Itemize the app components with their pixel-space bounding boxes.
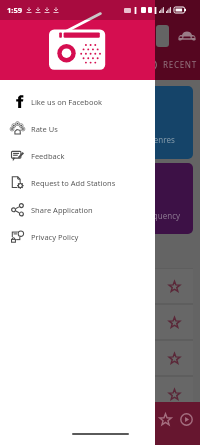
staticText: Share Application (31, 205, 93, 215)
other: Favourite (168, 388, 181, 401)
button[interactable]: Favourite (0, 304, 193, 340)
button[interactable]: Car mode (178, 30, 196, 41)
other: Favourite (168, 316, 181, 329)
staticText: Frequency (141, 210, 181, 221)
staticText: Like us on Facebook (31, 97, 102, 107)
button[interactable]: Favourite (159, 413, 172, 426)
button[interactable]: Request to Add Stations (0, 169, 155, 196)
staticText: Feedback (31, 151, 65, 161)
other: Favourite (168, 352, 181, 365)
staticText: Genres (148, 134, 175, 145)
button[interactable]: RECENT (163, 59, 197, 70)
button[interactable]: Privacy Policy (0, 223, 155, 250)
button[interactable]: Like us on Facebook (0, 88, 155, 115)
button[interactable]: Share Application (0, 196, 155, 223)
button[interactable]: Favourite (0, 376, 193, 412)
other: Favourite (168, 280, 181, 293)
staticText: Privacy Policy (31, 232, 79, 242)
staticText: Request to Add Stations (31, 178, 116, 188)
button[interactable]: Favourite (0, 268, 193, 304)
button[interactable]: Search (156, 25, 169, 47)
button[interactable]: Rate Us (0, 115, 155, 142)
staticText: Rate Us (31, 124, 58, 134)
staticText: 1:59 (7, 5, 22, 15)
button[interactable]: Play (180, 413, 193, 426)
button[interactable]: Favourite (0, 412, 193, 445)
button[interactable]: Feedback (0, 142, 155, 169)
button[interactable]: Frequency (7, 163, 193, 234)
button[interactable]: Favourite (0, 340, 193, 376)
staticText: RECENT (163, 59, 197, 70)
button[interactable]: Genres (7, 86, 193, 159)
other: Favourite (168, 422, 181, 435)
